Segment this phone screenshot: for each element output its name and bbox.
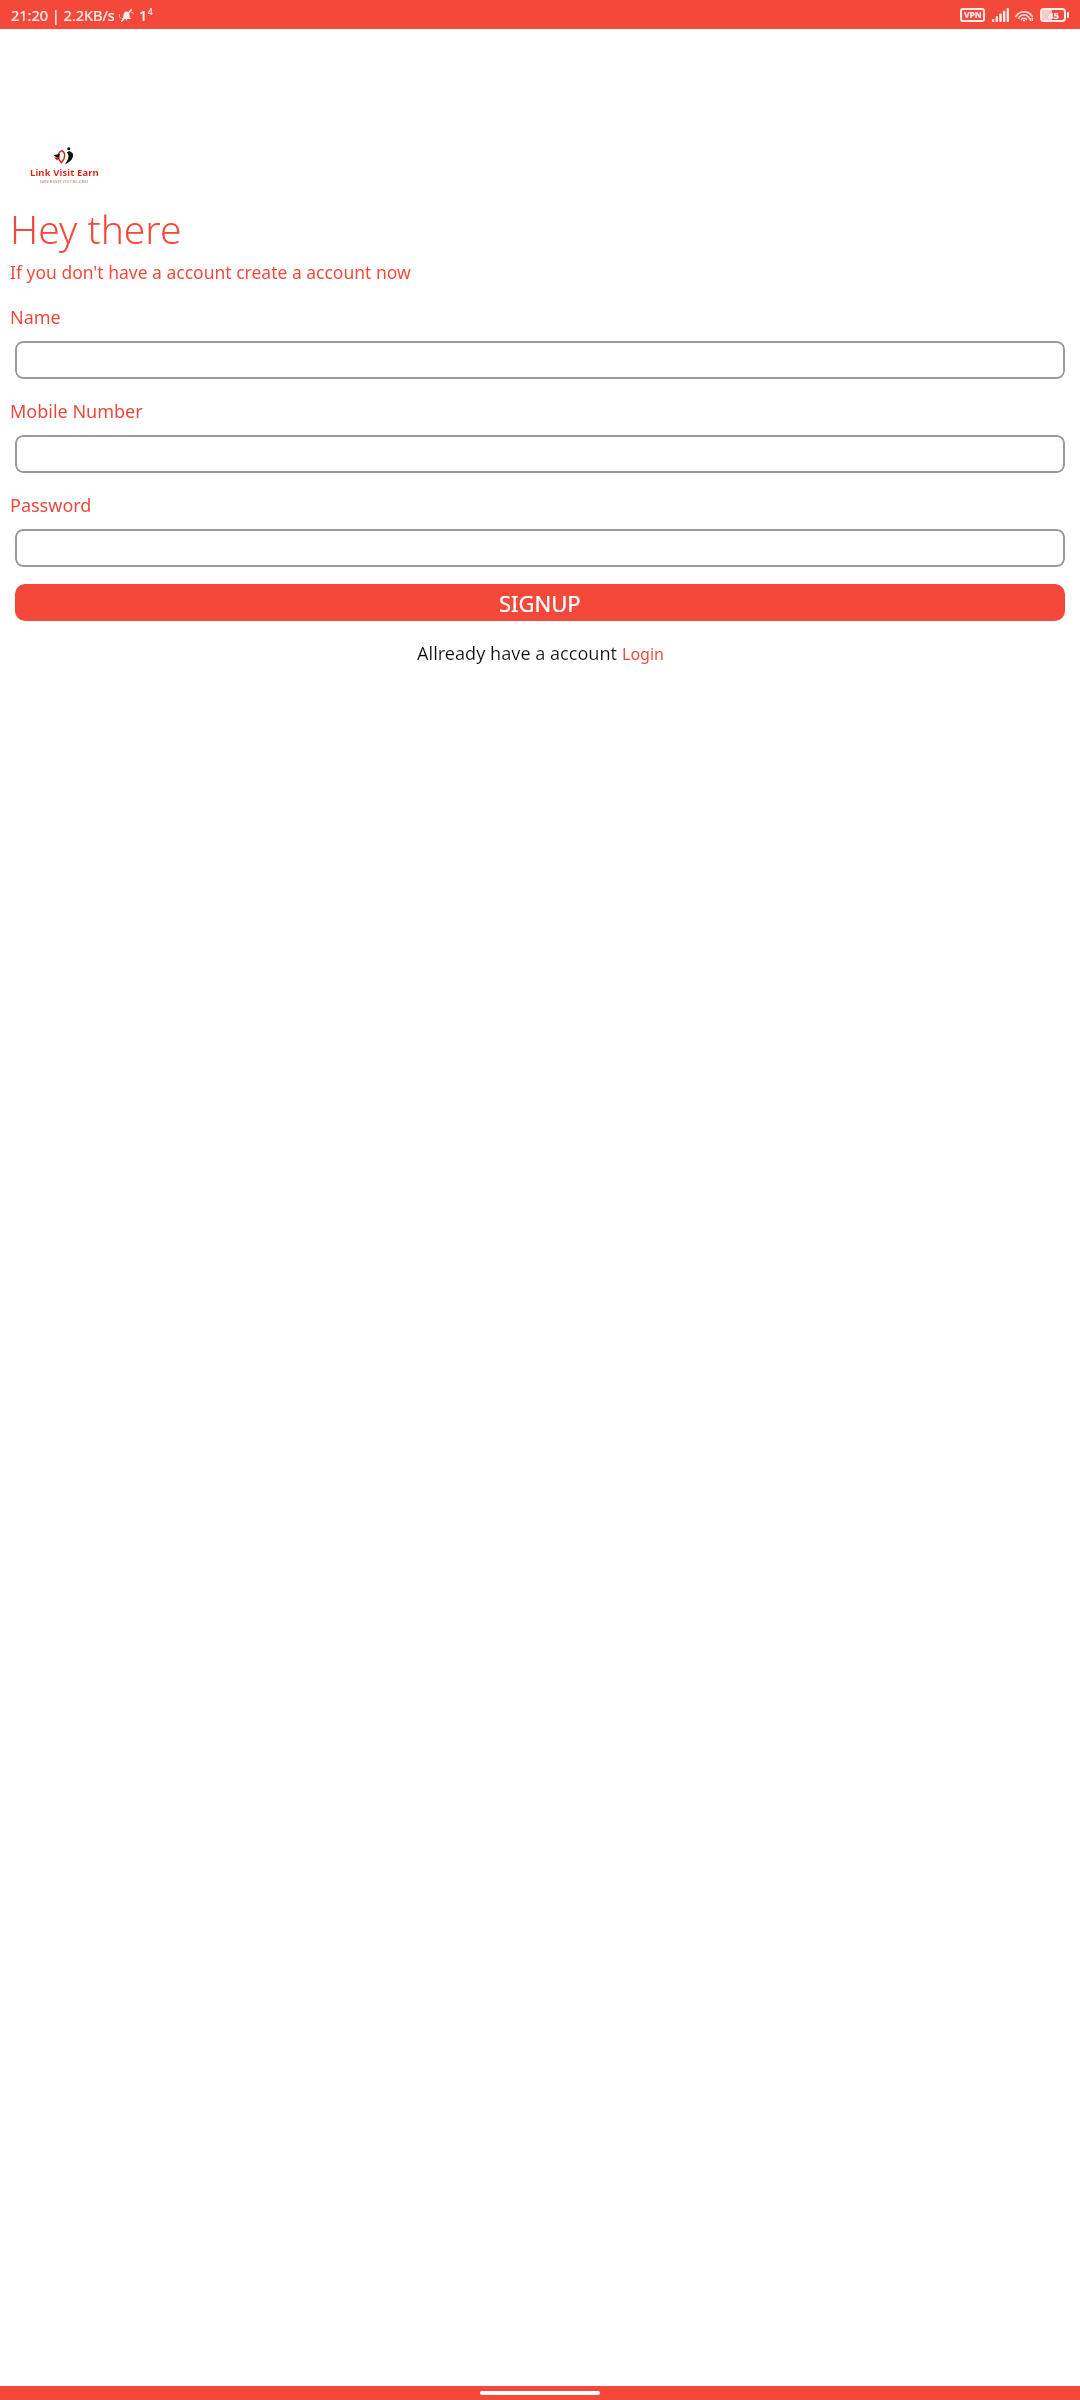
- button[interactable]: [15, 435, 1065, 473]
- staticText: 21:20 | 2.2KB/s: [11, 5, 115, 25]
- button[interactable]: [15, 341, 1065, 379]
- button[interactable]: Login: [622, 643, 664, 665]
- staticText: 45: [1048, 9, 1059, 22]
- staticText: Login: [622, 643, 664, 665]
- button[interactable]: [15, 529, 1065, 567]
- staticText: Hey there: [10, 202, 182, 255]
- staticText: Password: [10, 493, 92, 518]
- staticText: Name: [10, 305, 61, 330]
- staticText: EARN MONEY VISITING LINKS: [40, 180, 89, 184]
- staticText: Mobile Number: [10, 399, 143, 424]
- staticText: SIGNUP: [499, 588, 581, 618]
- staticText: Allready have a account: [417, 641, 622, 666]
- staticText: Link Visit Earn: [30, 166, 99, 179]
- staticText: If you don't have a account create a acc…: [10, 260, 411, 284]
- staticText: 4: [148, 6, 153, 17]
- button[interactable]: SIGNUP: [15, 584, 1065, 621]
- staticText: 1: [139, 5, 148, 25]
- staticText: VPN: [964, 9, 982, 21]
